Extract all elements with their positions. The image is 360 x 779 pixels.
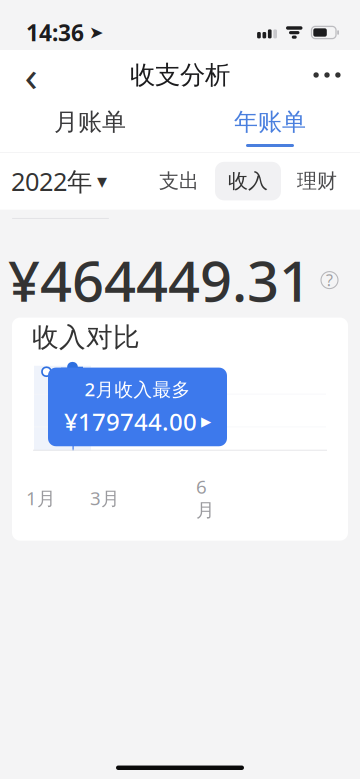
staticText: 收入: [228, 169, 268, 193]
button[interactable]: 返回: [7, 53, 55, 97]
staticText: ‹: [24, 47, 37, 103]
button[interactable]: 月账单: [0, 100, 180, 152]
staticText: 月账单: [54, 107, 126, 137]
staticText: 14:36: [26, 17, 84, 47]
staticText: 收入对比: [32, 321, 140, 354]
staticText: 收支分析: [130, 59, 230, 90]
button[interactable]: 2022年: [9, 155, 109, 207]
button[interactable]: 收入: [215, 162, 281, 200]
staticText: 2月收入最多: [84, 377, 190, 401]
staticText: 3月: [90, 486, 120, 510]
staticText: 年账单: [234, 107, 306, 137]
staticText: ?: [326, 269, 333, 291]
staticText: 1月: [26, 486, 56, 510]
staticText: ➤: [89, 23, 104, 42]
staticText: ¥464449.31: [8, 243, 311, 317]
staticText: ▾: [97, 170, 107, 192]
button[interactable]: 支出: [146, 162, 212, 200]
staticText: ▶: [201, 414, 211, 429]
staticText: ¥179744.00: [64, 405, 197, 437]
button[interactable]: 年账单: [180, 100, 360, 152]
button[interactable]: 更多: [301, 53, 353, 97]
staticText: 理财: [297, 169, 337, 193]
staticText: 2022年: [11, 164, 92, 198]
button[interactable]: 2月收入最多 ¥179744.00: [48, 368, 227, 446]
staticText: 支出: [159, 169, 199, 193]
button[interactable]: 理财: [284, 162, 350, 200]
staticText: 6月: [196, 474, 215, 522]
button[interactable]: 说明: [321, 272, 338, 289]
